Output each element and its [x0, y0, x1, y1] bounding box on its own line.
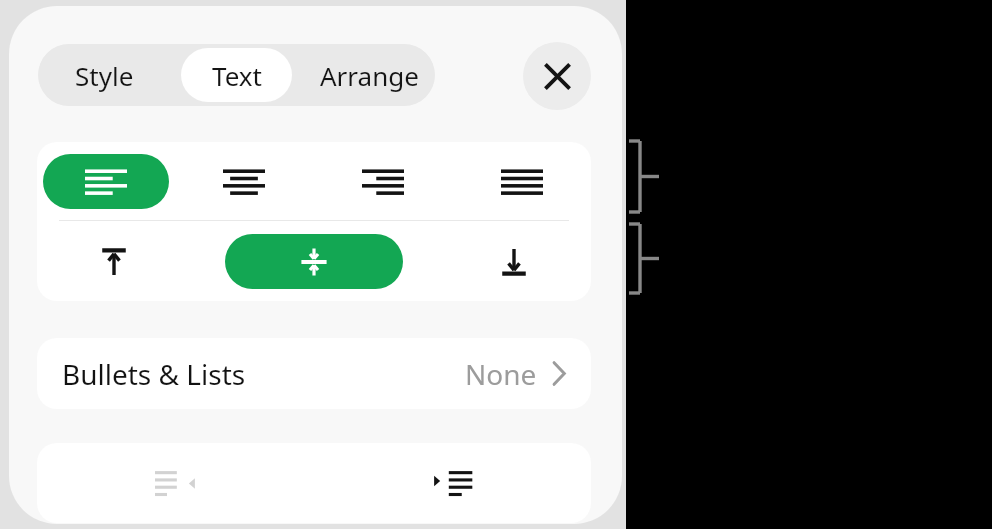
button[interactable]: Bullets & Lists — [37, 338, 591, 409]
button[interactable]: Style — [38, 44, 171, 106]
button[interactable]: Align center — [198, 154, 290, 209]
button[interactable]: Close — [523, 42, 591, 110]
staticText: Style — [75, 58, 134, 93]
button[interactable]: Align bottom — [468, 234, 560, 289]
button[interactable]: Align right — [337, 154, 429, 209]
button[interactable]: Justify — [476, 154, 568, 209]
button[interactable]: Arrange — [303, 44, 435, 106]
staticText: Arrange — [320, 58, 419, 93]
button[interactable]: Align left — [43, 154, 169, 209]
button[interactable]: Align top — [68, 234, 160, 289]
staticText: Text Color — [61, 55, 193, 93]
button[interactable]: Decrease indent — [37, 443, 314, 523]
staticText: None — [465, 355, 537, 393]
button[interactable]: Text — [171, 44, 303, 106]
staticText: Bullets & Lists — [62, 355, 246, 393]
staticText: Text — [212, 58, 262, 93]
button[interactable]: Increase indent — [314, 443, 591, 523]
button[interactable]: Align middle — [225, 234, 403, 289]
